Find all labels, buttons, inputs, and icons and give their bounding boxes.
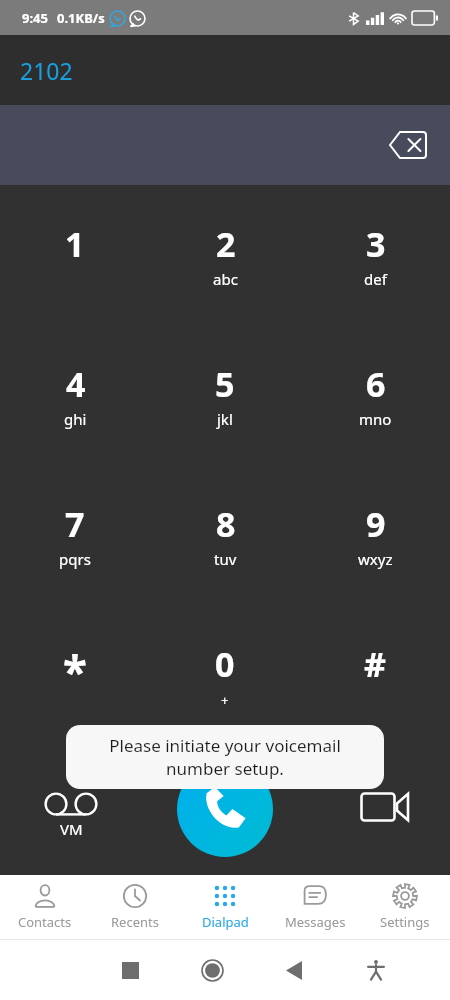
staticText: 2102 [20,55,73,86]
staticText: 0 [215,641,235,687]
staticText: 5 [215,361,235,407]
staticText: 8 [216,501,236,547]
button[interactable]: 1 [0,199,150,339]
button[interactable]: 9 [300,479,450,619]
staticText: Please initiate your voicemail number se… [80,734,370,780]
staticText: VM [60,819,83,839]
button[interactable]: Recent apps [89,940,171,1000]
staticText: 3 [366,221,386,267]
staticText: Settings [380,913,430,931]
button[interactable]: 0 [150,619,300,759]
staticText: Messages [285,913,346,931]
button[interactable]: Video call [356,778,414,836]
staticText: 4 [66,361,86,407]
button[interactable]: * [0,619,150,759]
staticText: 9 [366,501,386,547]
staticText: Dialpad [202,913,249,931]
staticText: 1 [65,221,85,267]
staticText: Contacts [18,913,72,931]
staticText: Recents [111,913,159,931]
staticText: tuv [214,549,237,569]
button[interactable]: Accessibility [335,940,417,1000]
staticText: # [364,641,386,683]
staticText: 9:45 [22,9,48,27]
staticText: mno [359,409,392,429]
button[interactable]: VM [40,788,102,843]
button[interactable]: 4 [0,339,150,479]
staticText: def [364,269,387,289]
button[interactable]: Settings [360,875,450,939]
button[interactable]: Contacts [0,875,90,939]
staticText: abc [213,269,238,289]
button[interactable]: 3 [300,199,450,339]
staticText: 0.1KB/s [57,9,105,27]
button[interactable]: Recents [90,875,180,939]
staticText: + [221,691,229,709]
staticText: 2 [216,221,236,267]
button[interactable]: 2 [150,199,300,339]
staticText: jkl [217,409,233,429]
button[interactable]: # [300,619,450,759]
button[interactable]: Call [177,761,273,857]
button[interactable]: 5 [150,339,300,479]
staticText: pqrs [59,549,91,569]
staticText: ghi [64,409,87,429]
staticText: 7 [65,501,85,547]
button[interactable]: 8 [150,479,300,619]
staticText: * [63,641,87,683]
button[interactable]: Back [253,940,335,1000]
button[interactable]: Messages [270,875,360,939]
button[interactable]: 7 [0,479,150,619]
button[interactable]: 6 [300,339,450,479]
button[interactable]: Dialpad [180,875,270,939]
button[interactable]: Home [171,940,253,1000]
staticText: 6 [366,361,386,407]
button[interactable]: Backspace [380,117,436,173]
staticText: wxyz [358,549,393,569]
